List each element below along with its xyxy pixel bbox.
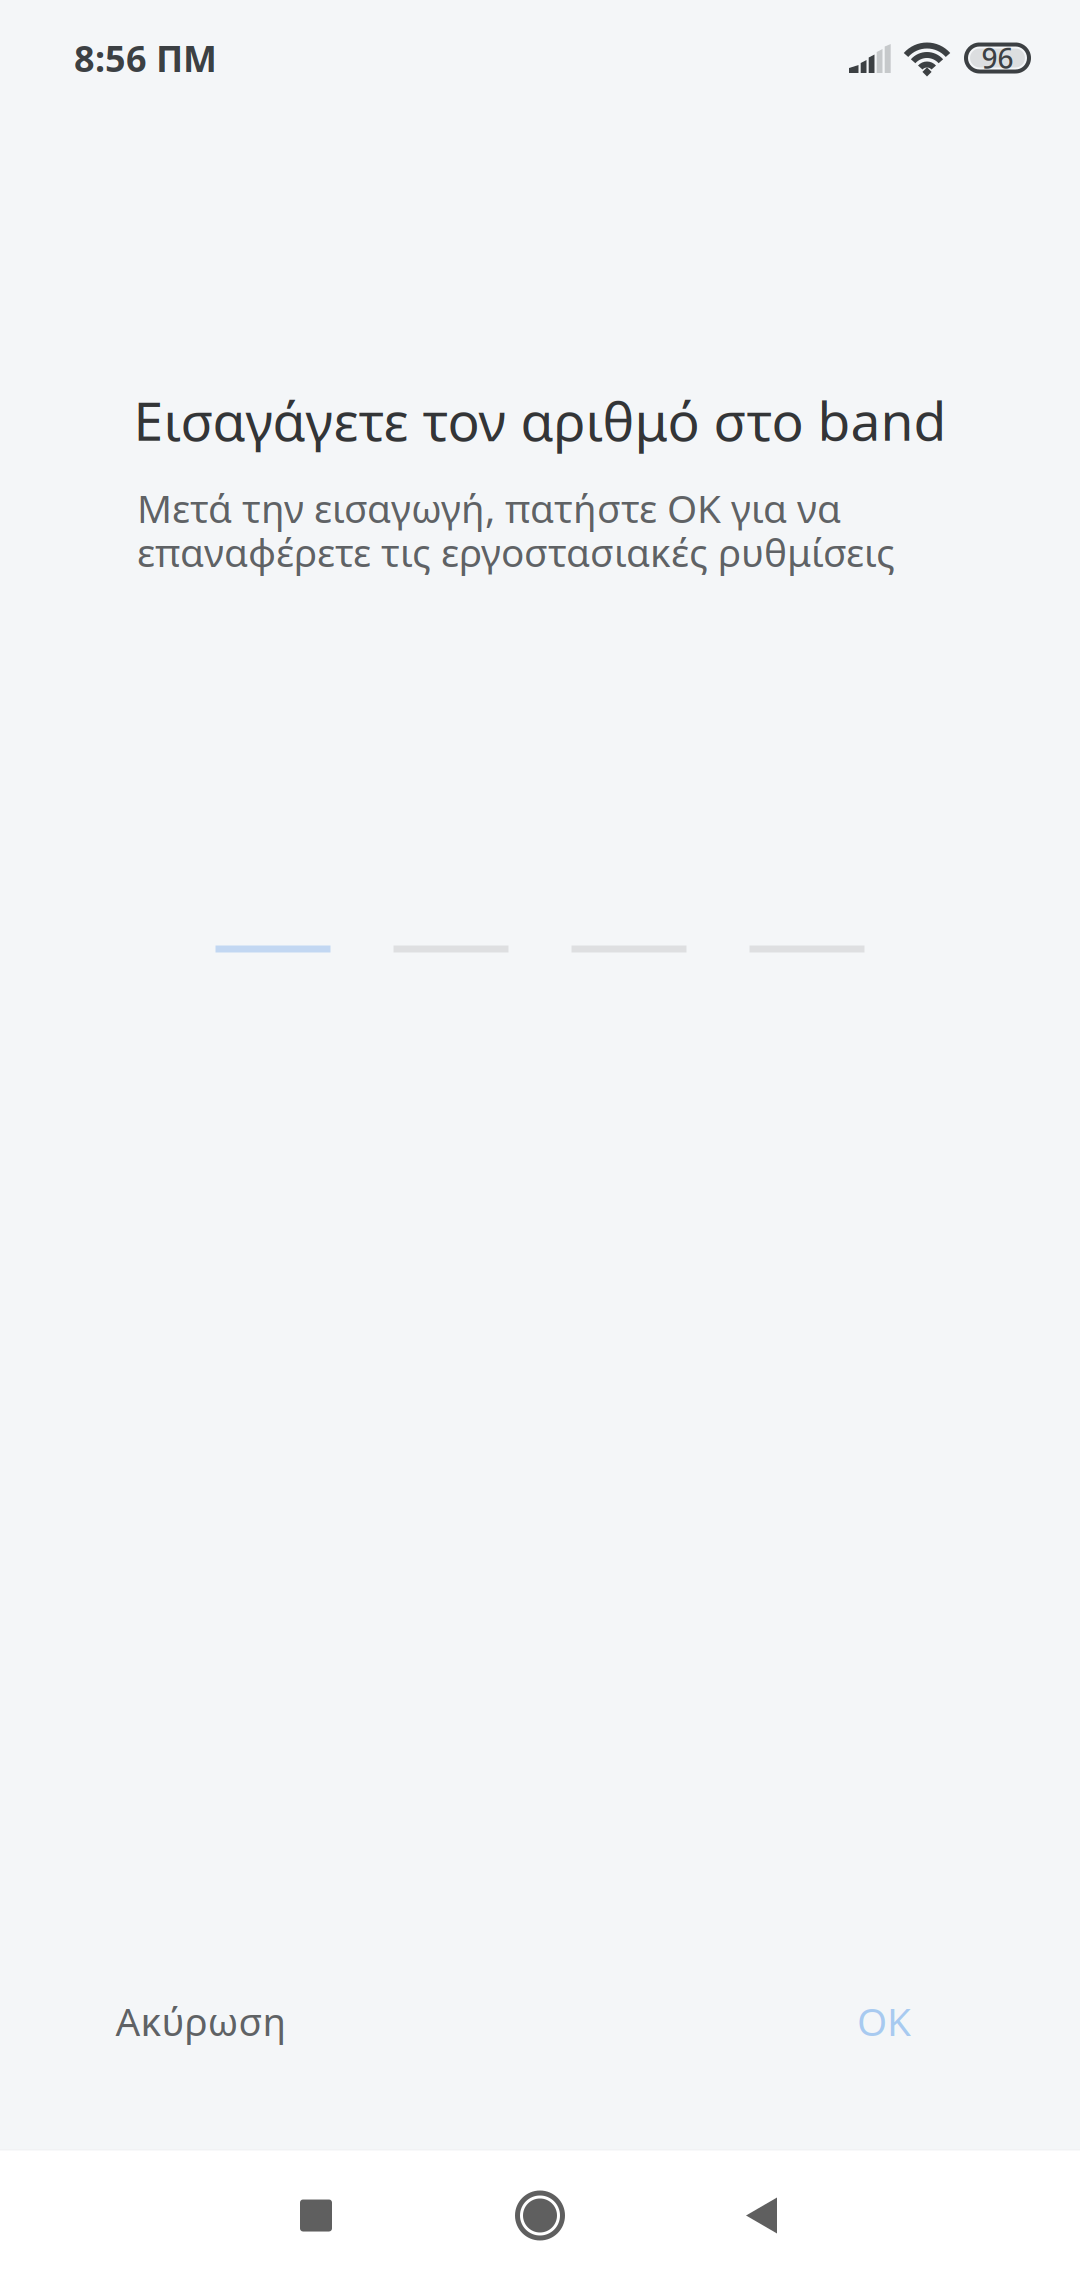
staticText: Ακύρωση (115, 1995, 286, 2047)
button[interactable]: Back (674, 2150, 854, 2280)
staticText: Μετά την εισαγωγή, πατήστε OK για να (137, 482, 841, 534)
staticText: επαναφέρετε τις εργοστασιακές ρυθμίσεις (137, 526, 895, 578)
button[interactable]: OK (827, 1969, 941, 2073)
staticText: OK (857, 1995, 911, 2047)
button[interactable]: Home (450, 2150, 630, 2280)
button[interactable]: Recent apps (226, 2150, 406, 2280)
staticText: 96 (981, 39, 1013, 77)
staticText: 8:56 ΠΜ (74, 34, 217, 82)
staticText: Εισαγάγετε τον αριθμό στο band (133, 385, 946, 455)
button[interactable]: Ακύρωση (85, 1969, 316, 2073)
